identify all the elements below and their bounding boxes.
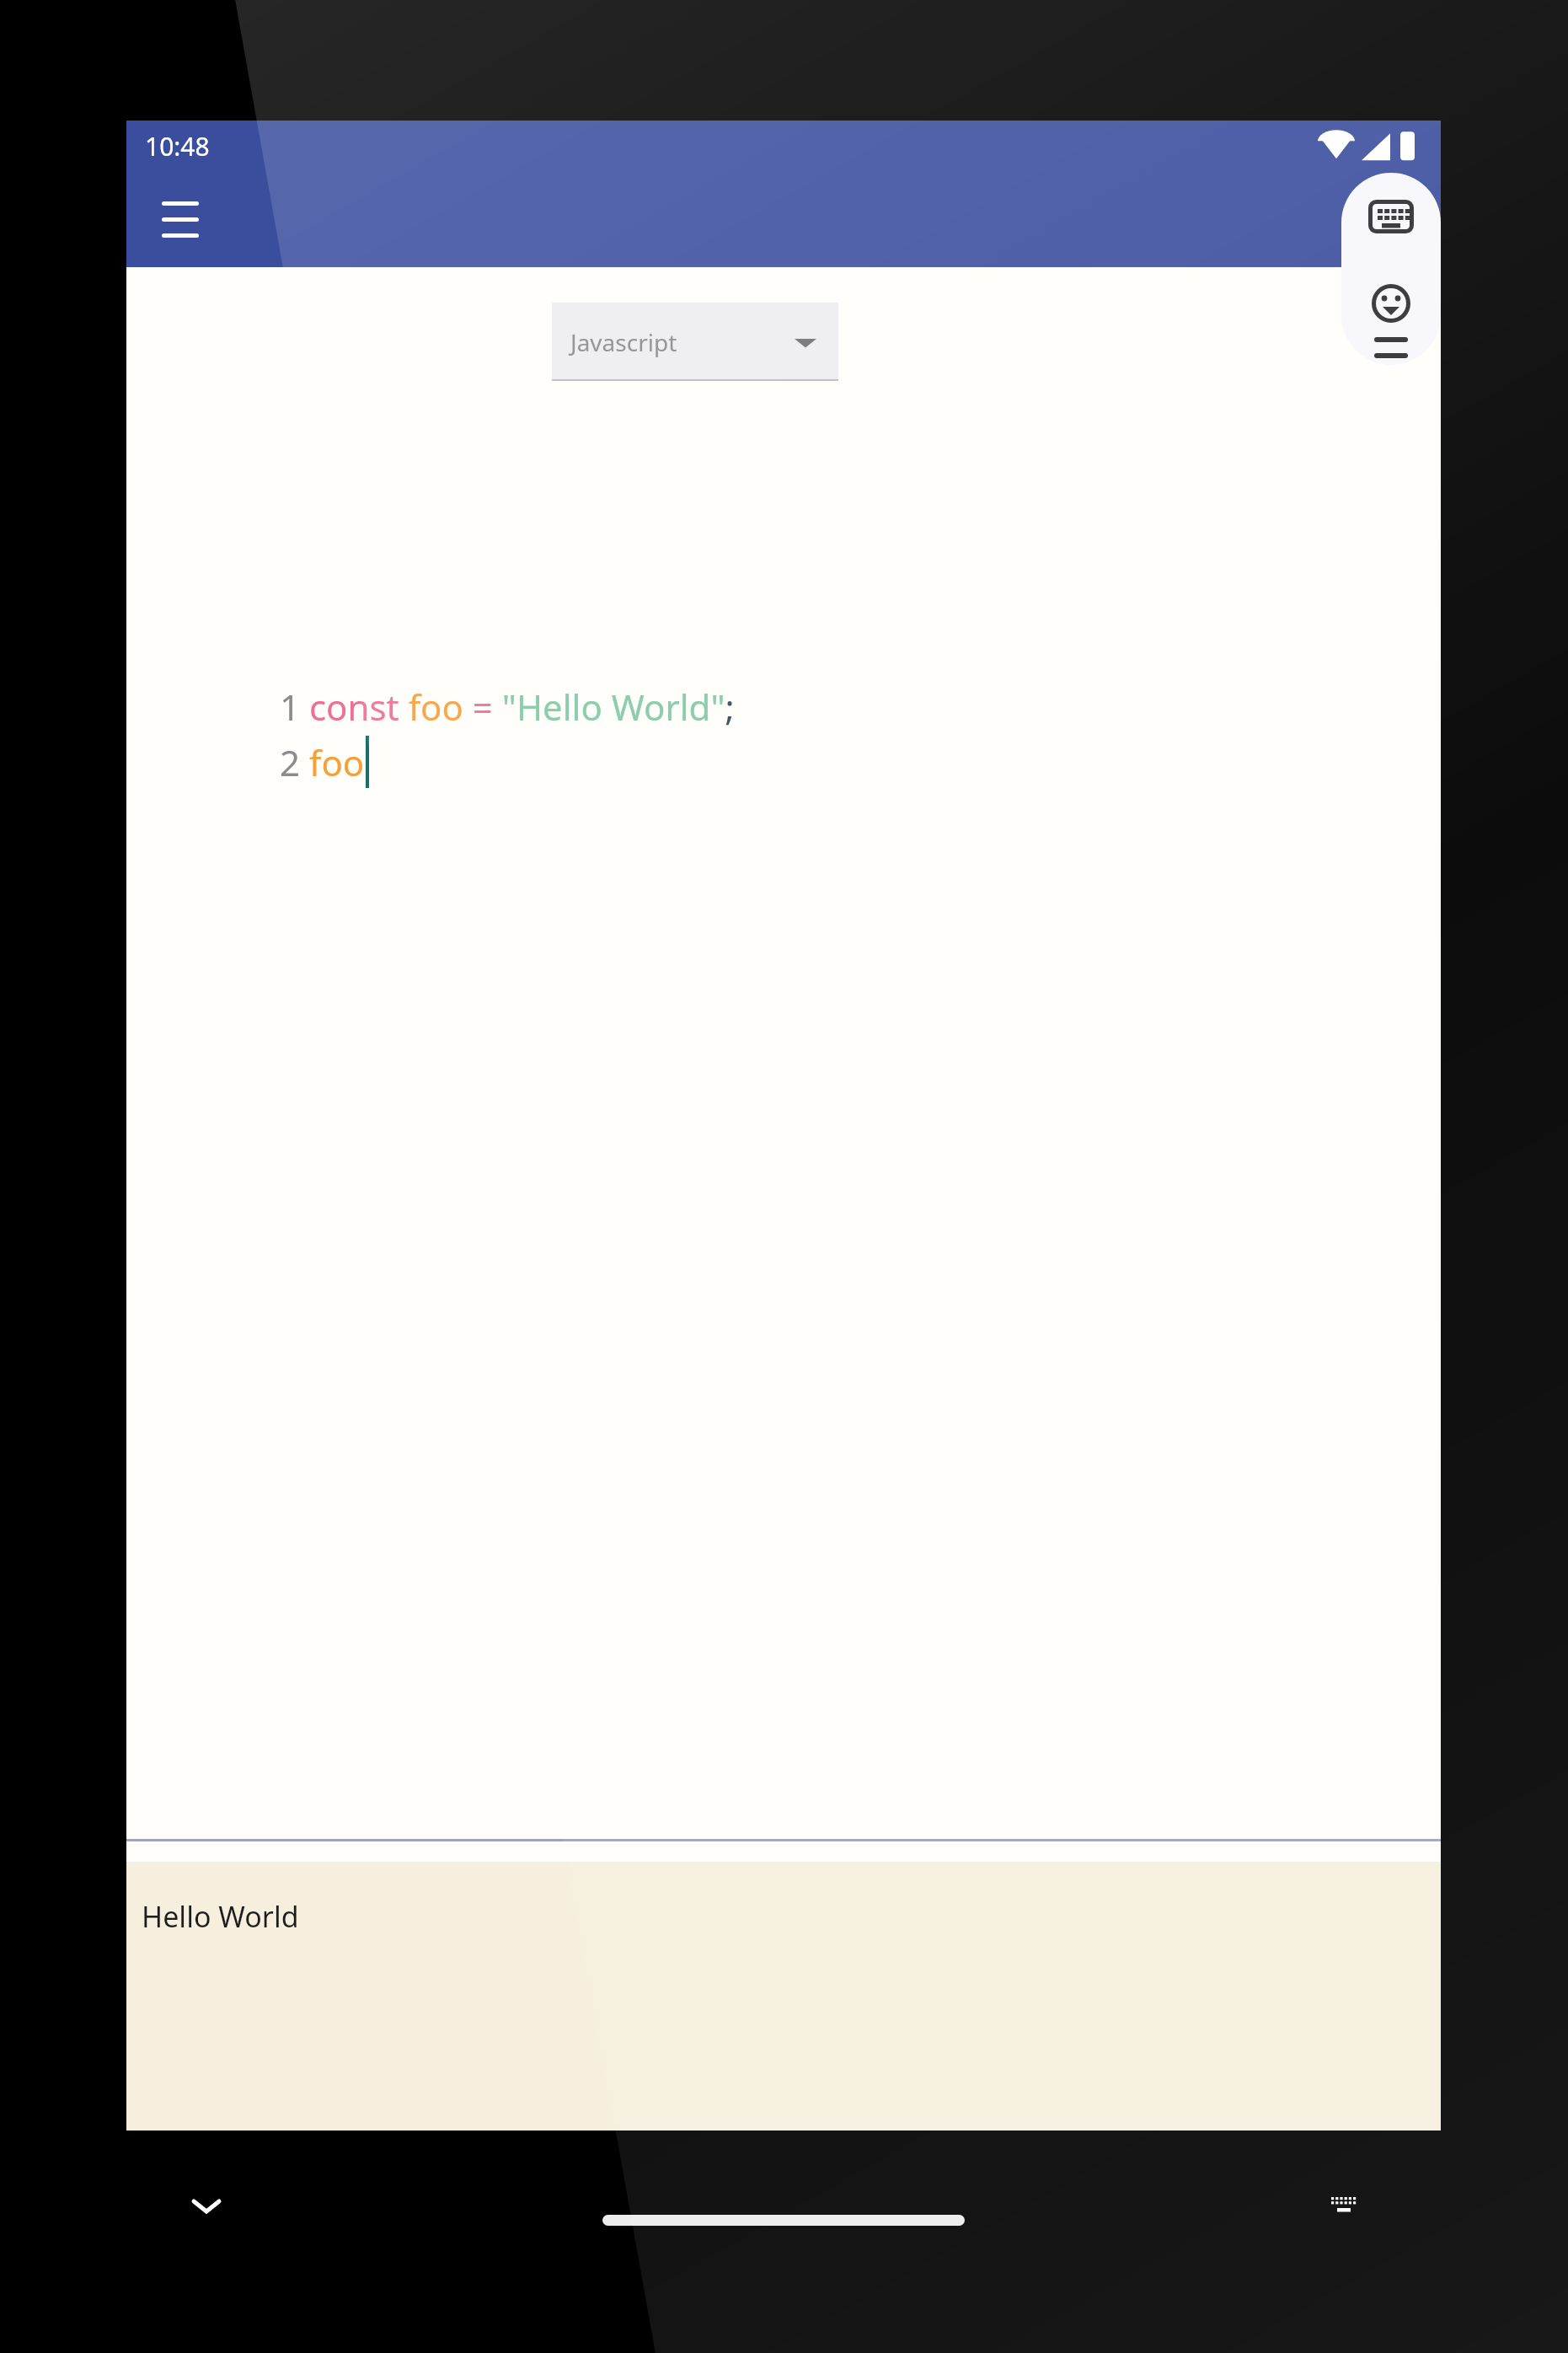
staticText: Javascript: [570, 326, 677, 358]
staticText: 10:48: [145, 129, 210, 163]
button[interactable]: Emoji: [1341, 260, 1441, 346]
button[interactable]: Keyboard: [1341, 173, 1441, 260]
button[interactable]: More options: [1341, 346, 1441, 365]
button[interactable]: Switch keyboard: [1314, 2177, 1373, 2236]
staticText: 2 foo: [280, 738, 365, 786]
button[interactable]: Menu: [145, 184, 216, 255]
button[interactable]: Javascript: [552, 303, 838, 381]
button[interactable]: Hide keyboard: [177, 2177, 236, 2236]
staticText: 1 const foo = "Hello World";: [280, 683, 735, 731]
staticText: Hello World: [142, 1897, 299, 1936]
button[interactable]: [602, 2215, 965, 2226]
